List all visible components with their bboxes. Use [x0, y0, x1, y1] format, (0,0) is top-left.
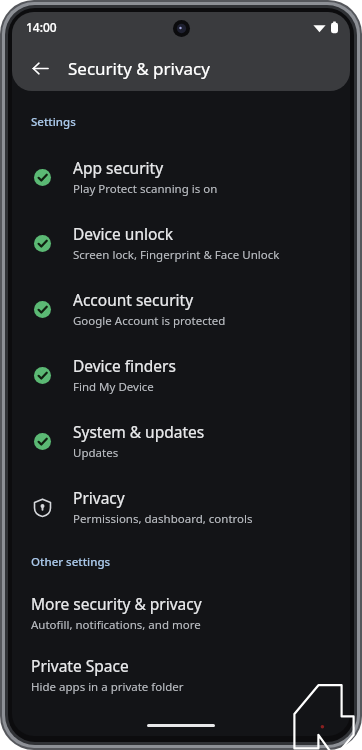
button[interactable]: Device finders [12, 342, 350, 408]
button[interactable]: System & updates [12, 408, 350, 474]
staticText: Permissions, dashboard, controls [73, 511, 253, 527]
staticText: Account security [73, 289, 194, 310]
button[interactable]: Account security [12, 276, 350, 342]
staticText: Find My Device [73, 379, 154, 395]
staticText: Updates [73, 445, 119, 461]
staticText: Privacy [73, 487, 125, 508]
button[interactable]: Device unlock [12, 210, 350, 276]
button[interactable]: More security & privacy [12, 582, 350, 644]
staticText: App security [73, 157, 164, 178]
staticText: Private Space [31, 655, 129, 676]
button[interactable]: App security [12, 144, 350, 210]
staticText: Device unlock [73, 223, 174, 244]
button[interactable]: Back [22, 50, 58, 86]
staticText: Hide apps in a private folder [31, 679, 184, 695]
staticText: System & updates [73, 421, 205, 442]
staticText: Screen lock, Fingerprint & Face Unlock [73, 247, 280, 263]
staticText: Other settings [31, 554, 111, 570]
staticText: Autofill, notifications, and more [31, 617, 201, 633]
staticText: More security & privacy [31, 593, 202, 614]
staticText: Security & privacy [68, 57, 210, 80]
staticText: Device finders [73, 355, 176, 376]
staticText: Play Protect scanning is on [73, 181, 218, 197]
button[interactable]: Privacy [12, 474, 350, 540]
staticText: 14:00 [26, 19, 57, 35]
button[interactable]: Private Space [12, 644, 350, 706]
staticText: Google Account is protected [73, 313, 226, 329]
staticText: Settings [31, 114, 76, 130]
